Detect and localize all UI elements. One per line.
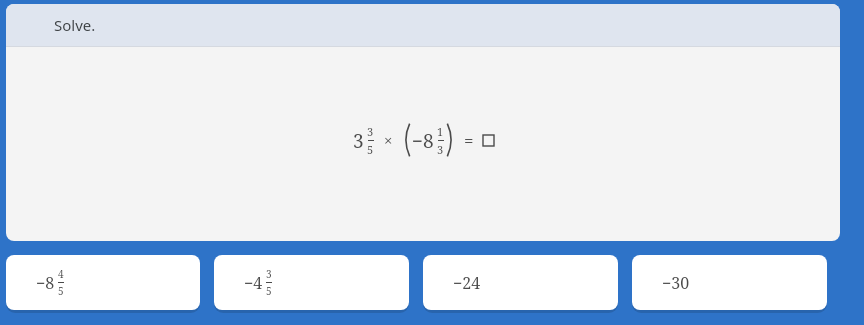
staticText: −30 (662, 272, 690, 294)
button[interactable]: −4 (214, 255, 409, 310)
staticText: 5 (58, 284, 64, 298)
button[interactable]: −8 (6, 255, 200, 310)
staticText: −24 (453, 272, 481, 294)
staticText: 1 (437, 124, 444, 139)
staticText: × (384, 130, 393, 150)
staticText: 3 (266, 267, 272, 281)
staticText: Solve. (54, 15, 96, 35)
staticText: 3 (353, 128, 364, 154)
staticText: 5 (266, 284, 272, 298)
button[interactable]: −24 (423, 255, 618, 310)
button[interactable]: −30 (632, 255, 827, 310)
staticText: −8 (412, 128, 434, 154)
staticText: −4 (244, 272, 263, 294)
staticText: 4 (58, 267, 64, 281)
staticText: −8 (36, 272, 55, 294)
staticText: 3 (437, 142, 444, 157)
staticText: 3 (367, 124, 374, 139)
staticText: 5 (367, 142, 374, 157)
staticText: = (464, 129, 474, 152)
